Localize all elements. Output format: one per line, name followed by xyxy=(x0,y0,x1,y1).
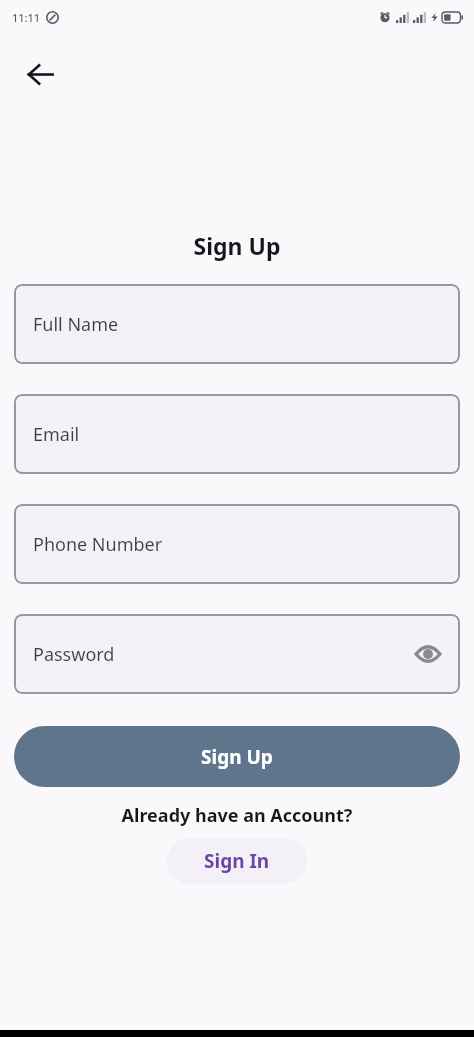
button[interactable]: Full Name xyxy=(14,284,460,364)
button[interactable]: Show password xyxy=(412,638,444,670)
staticText: Phone Number xyxy=(33,532,163,557)
button[interactable]: Phone Number xyxy=(14,504,460,584)
staticText: Sign Up xyxy=(201,744,273,770)
staticText: Email xyxy=(33,422,80,447)
staticText: Already have an Account? xyxy=(0,803,474,828)
staticText: 11:11 xyxy=(12,10,41,25)
staticText: Full Name xyxy=(33,312,119,337)
staticText: Sign In xyxy=(204,848,270,874)
button[interactable]: Sign In xyxy=(167,838,307,884)
staticText: Sign Up xyxy=(0,230,474,261)
button[interactable]: Sign Up xyxy=(14,726,460,787)
staticText: Password xyxy=(33,642,115,667)
button[interactable]: Email xyxy=(14,394,460,474)
button[interactable]: Back xyxy=(18,52,62,96)
button[interactable]: Password xyxy=(14,614,460,694)
